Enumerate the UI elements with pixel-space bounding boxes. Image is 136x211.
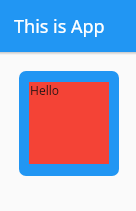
staticText: Hello (30, 82, 60, 98)
staticText: This is App (14, 14, 105, 39)
button[interactable]: Hello (19, 71, 119, 176)
button[interactable]: This is App (0, 0, 136, 52)
